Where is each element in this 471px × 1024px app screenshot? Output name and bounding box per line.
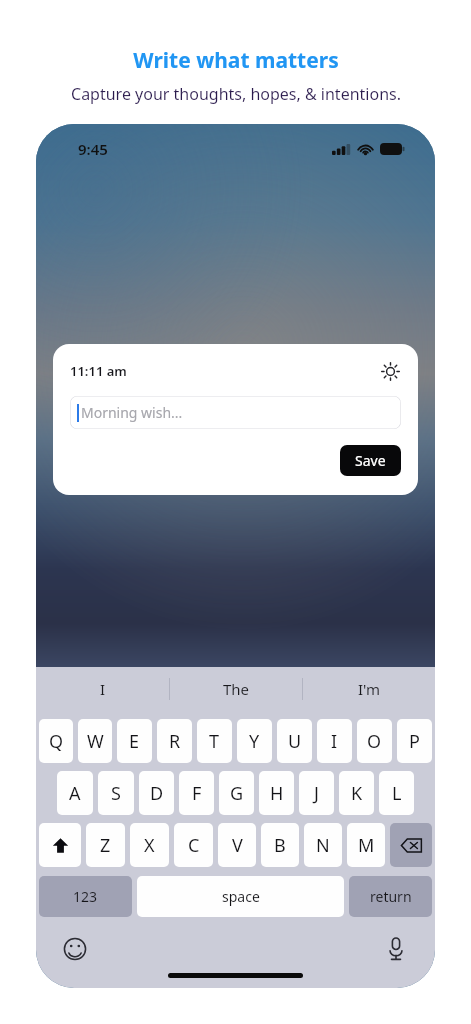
button[interactable]: V bbox=[218, 823, 256, 867]
button[interactable]: R bbox=[157, 719, 192, 763]
button[interactable]: G bbox=[219, 771, 254, 815]
staticText: 9:45 bbox=[78, 139, 108, 159]
button[interactable]: I'm bbox=[303, 667, 435, 711]
staticText: return bbox=[370, 887, 412, 906]
button[interactable]: The bbox=[170, 667, 302, 711]
staticText: Morning wish... bbox=[81, 403, 183, 422]
button[interactable]: I bbox=[317, 719, 352, 763]
button[interactable]: D bbox=[139, 771, 174, 815]
button[interactable]: Backspace bbox=[390, 823, 432, 867]
staticText: P bbox=[409, 729, 420, 754]
button[interactable]: N bbox=[304, 823, 342, 867]
button[interactable]: K bbox=[339, 771, 374, 815]
staticText: Z bbox=[100, 833, 111, 858]
staticText: A bbox=[69, 781, 81, 806]
staticText: K bbox=[351, 781, 363, 806]
button[interactable]: B bbox=[261, 823, 299, 867]
button[interactable]: H bbox=[259, 771, 294, 815]
staticText: 123 bbox=[73, 887, 98, 906]
staticText: Capture your thoughts, hopes, & intentio… bbox=[71, 83, 401, 105]
staticText: The bbox=[223, 679, 250, 699]
staticText: M bbox=[358, 833, 375, 858]
button[interactable]: W bbox=[78, 719, 112, 763]
staticText: Write what matters bbox=[133, 46, 339, 75]
button[interactable]: A bbox=[57, 771, 93, 815]
staticText: C bbox=[188, 833, 200, 858]
button[interactable]: Save bbox=[340, 445, 401, 476]
button[interactable]: Brightness bbox=[379, 360, 401, 382]
staticText: O bbox=[367, 729, 382, 754]
button[interactable]: Q bbox=[39, 719, 73, 763]
button[interactable]: T bbox=[197, 719, 232, 763]
button[interactable]: Shift bbox=[39, 823, 81, 867]
button[interactable]: Y bbox=[237, 719, 272, 763]
staticText: H bbox=[270, 781, 284, 806]
button[interactable]: Morning wish... bbox=[70, 396, 401, 429]
staticText: Q bbox=[49, 729, 64, 754]
staticText: X bbox=[144, 833, 155, 858]
button[interactable]: O bbox=[357, 719, 392, 763]
button[interactable]: space bbox=[137, 876, 344, 917]
staticText: S bbox=[111, 781, 121, 806]
staticText: U bbox=[288, 729, 302, 754]
button[interactable]: J bbox=[299, 771, 334, 815]
staticText: R bbox=[169, 729, 181, 754]
staticText: F bbox=[192, 781, 202, 806]
staticText: D bbox=[150, 781, 164, 806]
button[interactable]: L bbox=[379, 771, 414, 815]
staticText: Save bbox=[355, 451, 386, 470]
staticText: W bbox=[87, 729, 104, 754]
button[interactable]: return bbox=[349, 876, 432, 917]
staticText: J bbox=[314, 781, 319, 806]
button[interactable]: Emoji bbox=[60, 934, 90, 964]
staticText: I'm bbox=[358, 679, 381, 699]
staticText: 11:11 am bbox=[70, 362, 127, 380]
staticText: G bbox=[230, 781, 244, 806]
button[interactable]: F bbox=[179, 771, 214, 815]
staticText: B bbox=[274, 833, 286, 858]
button[interactable]: I bbox=[36, 667, 169, 711]
staticText: I bbox=[331, 729, 338, 754]
button[interactable]: 123 bbox=[39, 876, 132, 917]
button[interactable]: P bbox=[397, 719, 432, 763]
button[interactable]: S bbox=[98, 771, 134, 815]
button[interactable]: U bbox=[277, 719, 312, 763]
staticText: V bbox=[232, 833, 243, 858]
staticText: L bbox=[392, 781, 402, 806]
staticText: N bbox=[316, 833, 330, 858]
staticText: Y bbox=[249, 729, 260, 754]
button[interactable]: E bbox=[117, 719, 152, 763]
button[interactable]: Z bbox=[86, 823, 125, 867]
staticText: space bbox=[222, 887, 260, 906]
button[interactable]: Dictation bbox=[381, 934, 411, 964]
staticText: E bbox=[129, 729, 140, 754]
button[interactable]: C bbox=[174, 823, 213, 867]
staticText: I bbox=[100, 679, 106, 699]
button[interactable]: M bbox=[347, 823, 385, 867]
button[interactable]: X bbox=[130, 823, 169, 867]
staticText: T bbox=[209, 729, 220, 754]
